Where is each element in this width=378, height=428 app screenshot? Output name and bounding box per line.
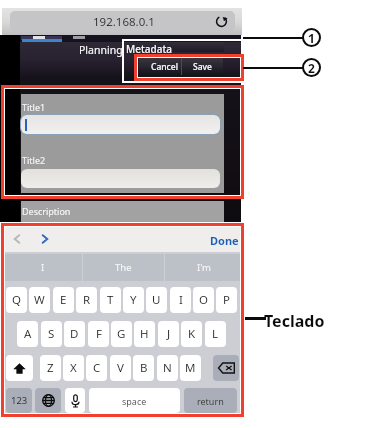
button[interactable]: F [88, 321, 109, 347]
button[interactable]: M [180, 355, 201, 381]
button[interactable]: C [86, 355, 107, 381]
button[interactable]: Z [40, 355, 61, 381]
staticText: X [70, 360, 77, 376]
staticText: 192.168.0.1 [93, 14, 155, 30]
button[interactable]: Backspace [213, 355, 239, 381]
button[interactable]: Reload [215, 15, 228, 28]
button[interactable]: Next field [39, 232, 51, 246]
button[interactable]: I'm [165, 254, 242, 281]
staticText: 1 [308, 30, 315, 46]
staticText: O [199, 292, 208, 308]
staticText: S [48, 326, 55, 342]
staticText: Title2 [22, 154, 46, 166]
staticText: Cancel [151, 61, 178, 73]
staticText: Metadata [126, 42, 172, 56]
button[interactable]: E [53, 287, 74, 313]
staticText: 123 [11, 394, 28, 407]
button[interactable]: K [181, 321, 202, 347]
button[interactable]: Q [6, 287, 27, 313]
button[interactable]: 192.168.0.1 [10, 11, 235, 32]
staticText: C [93, 360, 101, 376]
button[interactable]: Done [210, 233, 239, 248]
button[interactable]: Y [123, 287, 144, 313]
button[interactable] [139, 57, 223, 76]
button[interactable]: G [111, 321, 132, 347]
button[interactable]: Shift [6, 355, 33, 381]
staticText: I'm [197, 261, 211, 274]
staticText: W [34, 292, 45, 308]
button[interactable]: Change keyboard [35, 388, 61, 413]
staticText: P [223, 292, 230, 308]
staticText: M [185, 360, 196, 376]
staticText: Y [130, 292, 137, 308]
button[interactable]: The [83, 254, 164, 281]
button[interactable]: return [184, 388, 237, 413]
staticText: F [96, 326, 102, 342]
button[interactable]: space [89, 388, 180, 413]
staticText: R [83, 292, 91, 308]
button[interactable]: O [193, 287, 214, 313]
staticText: space [122, 395, 147, 407]
button[interactable]: U [146, 287, 167, 313]
staticText: Planning [79, 43, 123, 57]
staticText: Done [210, 233, 239, 248]
button[interactable]: J [158, 321, 179, 347]
staticText: H [140, 326, 149, 342]
button[interactable]: S [41, 321, 62, 347]
staticText: Save [193, 61, 212, 73]
button[interactable]: I [3, 254, 82, 281]
staticText: I [179, 292, 183, 308]
staticText: N [163, 360, 172, 376]
button[interactable]: P [216, 287, 237, 313]
button[interactable]: Previous field [11, 232, 23, 246]
button[interactable]: B [133, 355, 154, 381]
button[interactable]: R [76, 287, 97, 313]
staticText: A [24, 326, 32, 342]
button[interactable]: X [63, 355, 84, 381]
staticText: E [60, 292, 67, 308]
button[interactable]: L [205, 321, 226, 347]
staticText: The [115, 261, 132, 274]
staticText: Z [47, 360, 54, 376]
staticText: 2 [308, 60, 315, 76]
staticText: Title1 [22, 101, 46, 113]
button[interactable]: Numbers [6, 388, 32, 413]
staticText: T [107, 292, 114, 308]
staticText: K [188, 326, 196, 342]
button[interactable]: W [29, 287, 50, 313]
staticText: J [167, 326, 171, 342]
button[interactable]: Dictation [65, 388, 85, 413]
button[interactable]: A [17, 321, 38, 347]
staticText: I [41, 261, 45, 274]
button[interactable]: H [134, 321, 155, 347]
staticText: G [117, 326, 126, 342]
button[interactable]: D [64, 321, 85, 347]
button[interactable]: V [110, 355, 131, 381]
staticText: Description [22, 205, 71, 217]
button[interactable]: T [100, 287, 121, 313]
staticText: L [212, 326, 219, 342]
staticText: B [140, 360, 148, 376]
staticText: V [117, 360, 124, 376]
staticText: return [197, 395, 224, 407]
staticText: U [152, 292, 161, 308]
staticText: Q [12, 292, 21, 308]
button[interactable]: I [170, 287, 191, 313]
staticText: D [70, 326, 79, 342]
staticText: Teclado [264, 310, 325, 332]
button[interactable]: N [157, 355, 178, 381]
